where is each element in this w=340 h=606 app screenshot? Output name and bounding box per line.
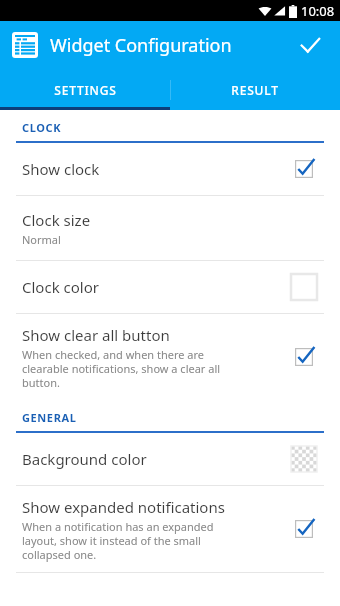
button[interactable]: Show clear all button — [0, 314, 340, 400]
button[interactable]: Clock color — [0, 261, 340, 313]
button[interactable]: Checked — [291, 156, 317, 182]
staticText: Show clear all button — [22, 325, 170, 345]
button[interactable]: Done — [290, 25, 330, 65]
staticText: Show expanded notifications — [22, 497, 225, 517]
staticText: Clock color — [22, 277, 99, 297]
button[interactable]: Show expanded notifications — [0, 486, 340, 572]
staticText: RESULT — [231, 82, 279, 98]
staticText: SETTINGS — [54, 82, 117, 98]
staticText: 10:08 — [301, 2, 335, 20]
button[interactable]: Checked — [291, 344, 317, 370]
button[interactable]: Pick clock color — [291, 274, 317, 300]
staticText: When checked, and when there are clearab… — [22, 347, 221, 390]
staticText: When a notification has an expanded layo… — [22, 519, 214, 562]
button[interactable]: Pick background color — [291, 446, 317, 472]
button[interactable]: SETTINGS — [0, 69, 170, 110]
staticText: Background color — [22, 449, 147, 469]
staticText: CLOCK — [22, 120, 62, 135]
button[interactable]: Show clock — [0, 143, 340, 195]
staticText: Normal — [22, 232, 61, 247]
staticText: Show clock — [22, 159, 100, 179]
button[interactable]: Background color — [0, 433, 340, 485]
staticText: Clock size — [22, 210, 91, 230]
staticText: GENERAL — [22, 410, 77, 425]
button[interactable]: Checked — [291, 516, 317, 542]
staticText: Widget Configuration — [50, 33, 232, 58]
button[interactable]: RESULT — [170, 69, 340, 110]
button[interactable]: Clock size — [0, 196, 340, 260]
